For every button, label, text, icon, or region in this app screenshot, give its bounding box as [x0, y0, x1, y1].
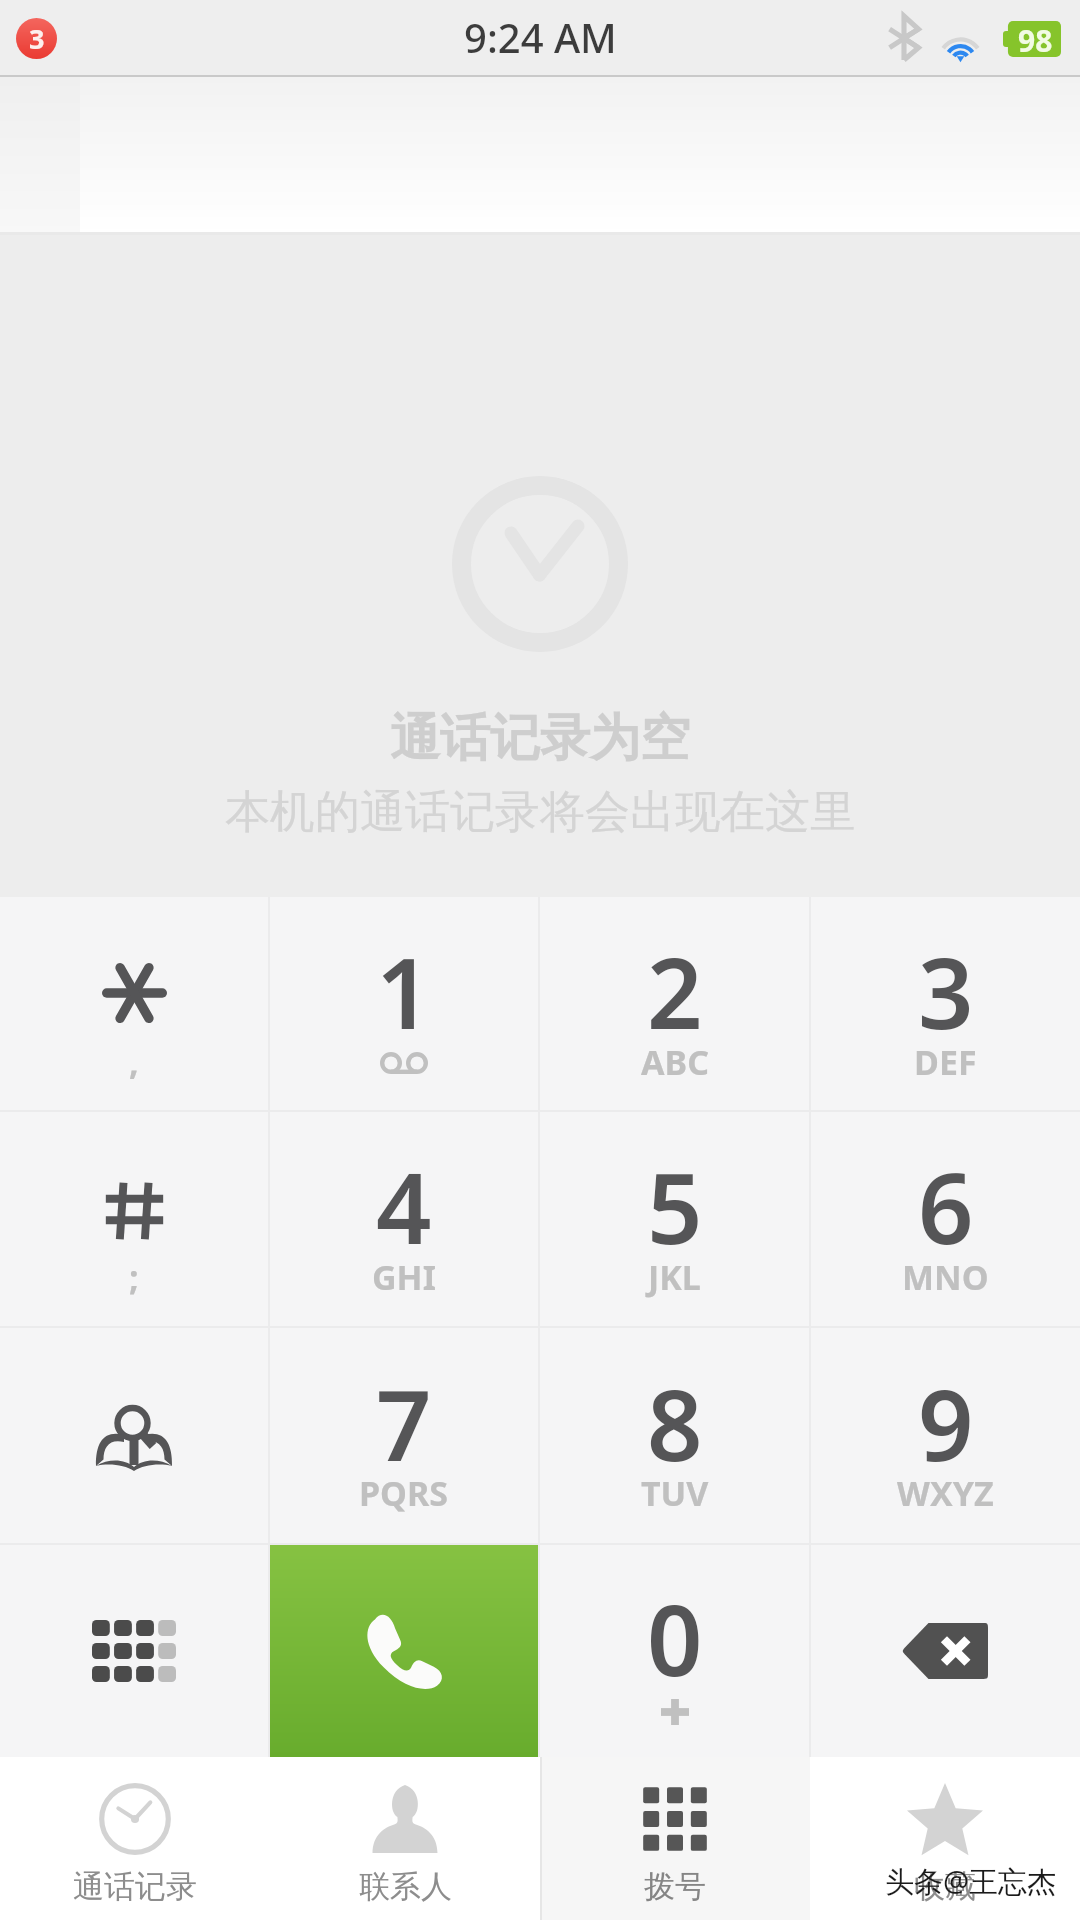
staticText: 9 [918, 1357, 974, 1489]
staticText: 3 [29, 20, 45, 57]
button[interactable]: Keypad [0, 1545, 268, 1757]
staticText: WXYZ [897, 1470, 994, 1516]
staticText: 8 [647, 1357, 703, 1489]
staticText: 5 [647, 1140, 703, 1272]
button[interactable]: Call [270, 1545, 538, 1757]
button[interactable]: Delete [811, 1545, 1080, 1757]
staticText: 9:24 AM [464, 10, 617, 64]
button[interactable]: 4 [270, 1112, 538, 1326]
staticText: 通话记录 [73, 1867, 197, 1906]
button[interactable]: 3 [811, 897, 1080, 1110]
button[interactable]: 8 [540, 1328, 809, 1543]
staticText: 本机的通话记录将会出现在这里 [225, 784, 855, 841]
staticText: ABC [641, 1039, 709, 1085]
staticText: DEF [914, 1039, 977, 1085]
staticText: 收藏 [914, 1867, 976, 1906]
staticText: 通话记录为空 [390, 707, 690, 770]
button[interactable]: 0 [540, 1545, 809, 1757]
staticText: 头条@王忘杰 [885, 1861, 1057, 1901]
button[interactable]: Pound [0, 1112, 268, 1326]
staticText: MNO [902, 1254, 989, 1300]
button[interactable]: 联系人 [270, 1757, 540, 1920]
button[interactable]: 5 [540, 1112, 809, 1326]
button[interactable]: Contacts [0, 1328, 268, 1543]
staticText: TUV [641, 1470, 709, 1516]
staticText: 1 [376, 925, 432, 1057]
staticText: 联系人 [359, 1867, 452, 1906]
staticText: 2 [647, 925, 703, 1057]
staticText: JKL [648, 1254, 701, 1300]
button[interactable]: 7 [270, 1328, 538, 1543]
button[interactable]: 收藏 [810, 1757, 1080, 1920]
staticText: PQRS [359, 1470, 449, 1516]
button[interactable]: 1 [270, 897, 538, 1110]
staticText: 98 [1018, 20, 1053, 56]
staticText: 3 [918, 925, 974, 1057]
staticText: GHI [372, 1254, 436, 1300]
staticText: 4 [376, 1140, 432, 1272]
staticText: 6 [918, 1140, 974, 1272]
button[interactable]: 拨号 [540, 1757, 810, 1920]
staticText: , [129, 1039, 139, 1085]
button[interactable]: Star [0, 897, 268, 1110]
staticText: 拨号 [644, 1867, 706, 1906]
staticText: 0 [647, 1572, 703, 1704]
button[interactable]: 9 [811, 1328, 1080, 1543]
staticText: 7 [376, 1357, 432, 1489]
button[interactable]: 2 [540, 897, 809, 1110]
button[interactable]: 通话记录 [0, 1757, 270, 1920]
staticText: ; [129, 1254, 139, 1300]
button[interactable]: 6 [811, 1112, 1080, 1326]
